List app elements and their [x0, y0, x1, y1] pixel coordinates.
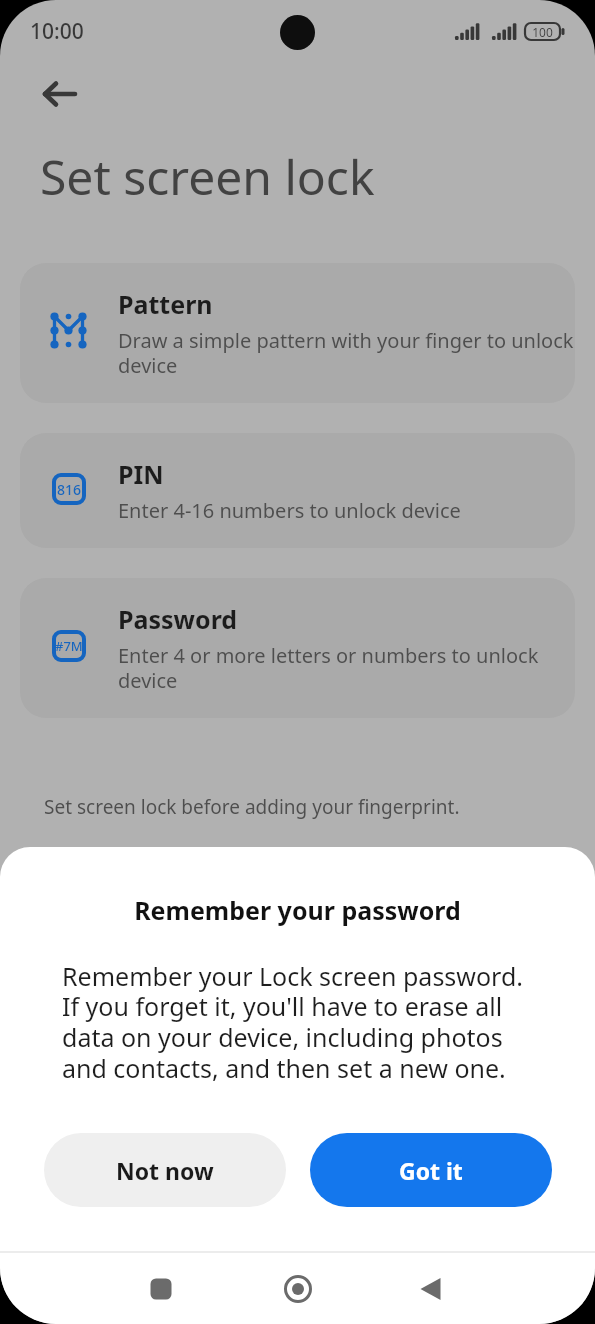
staticText: Set screen lock before adding your finge…	[44, 794, 460, 820]
staticText: Password	[118, 602, 238, 636]
staticText: Draw a simple pattern with your finger t…	[118, 327, 574, 379]
button[interactable]: Got it	[310, 1133, 552, 1207]
staticText: Enter 4-16 numbers to unlock device	[118, 497, 461, 524]
staticText: 100	[525, 24, 560, 40]
staticText: 10:00	[30, 17, 84, 46]
button[interactable]: #7M	[20, 578, 575, 718]
staticText: Set screen lock	[40, 144, 375, 209]
staticText: Remember your Lock screen password. If y…	[62, 959, 524, 1086]
staticText: PIN	[118, 457, 164, 491]
staticText: 816	[57, 480, 82, 499]
button[interactable]	[34, 72, 84, 116]
button[interactable]: Not now	[44, 1133, 286, 1207]
staticText: Remember your password	[0, 893, 595, 927]
button[interactable]	[273, 1264, 323, 1314]
button[interactable]	[136, 1264, 186, 1314]
staticText: Enter 4 or more letters or numbers to un…	[118, 642, 539, 694]
staticText: Pattern	[118, 287, 213, 321]
staticText: #7M	[55, 637, 83, 655]
staticText: Got it	[399, 1155, 463, 1186]
button[interactable]: Pattern	[20, 263, 575, 403]
button[interactable]	[406, 1264, 456, 1314]
button[interactable]: 816	[20, 433, 575, 548]
staticText: Not now	[116, 1155, 214, 1186]
